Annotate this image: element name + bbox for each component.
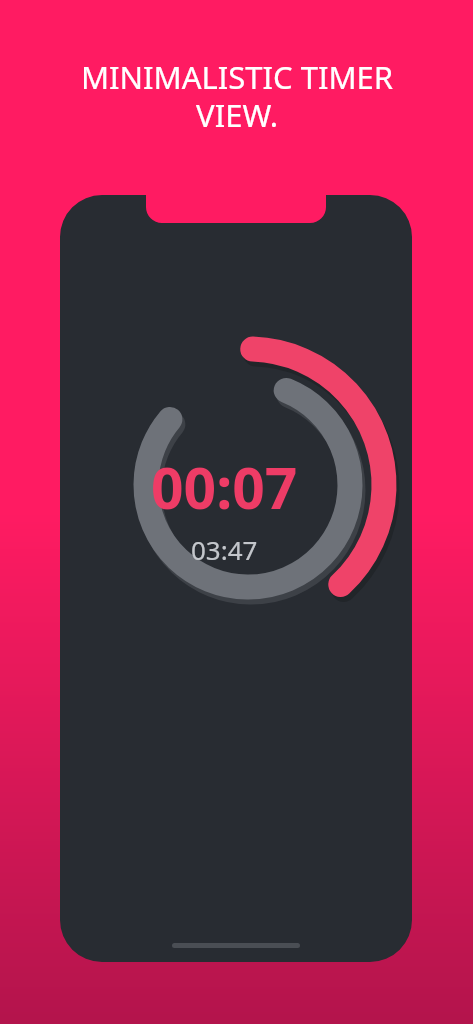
- staticText: 03:47: [191, 532, 258, 567]
- button[interactable]: Timer progress: [60, 195, 412, 962]
- staticText: 00:07: [151, 448, 298, 526]
- staticText: MINIMALISTIC TIMER VIEW.: [37, 56, 437, 136]
